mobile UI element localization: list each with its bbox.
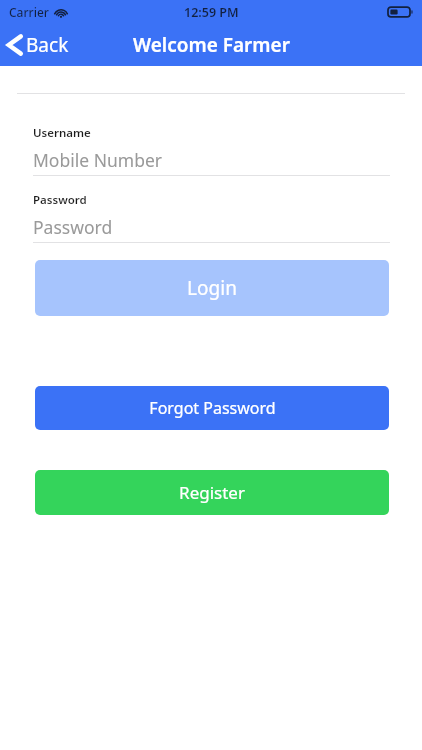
button[interactable]: Register [35,470,389,515]
staticText: Back [26,32,69,58]
staticText: Password [33,215,113,239]
staticText: 12:59 PM [184,4,239,21]
button[interactable]: Forgot Password [35,386,389,430]
other: Back [7,33,22,57]
staticText: Mobile Number [33,148,163,172]
staticText: Login [187,275,237,301]
staticText: Welcome Farmer [133,32,290,58]
button[interactable]: Password [33,214,390,240]
staticText: Username [33,125,91,141]
staticText: Register [179,481,245,504]
staticText: Forgot Password [149,397,276,419]
staticText: Carrier [9,4,49,20]
staticText: Password [33,192,87,208]
button[interactable]: Login [35,260,389,316]
button[interactable]: Back [0,28,79,62]
button[interactable]: Mobile Number [33,147,390,173]
